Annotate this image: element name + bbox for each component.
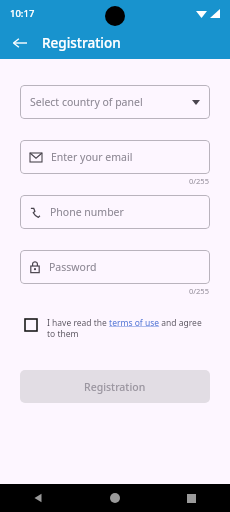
staticText: 0/255 [189,176,209,186]
staticText: I have read the terms of use and agree t… [47,317,208,339]
button[interactable]: I have read the terms of use and agree t… [22,317,208,339]
staticText: 0/255 [189,286,209,296]
button[interactable]: Enter your email [20,140,210,174]
button[interactable]: Back [6,29,34,57]
staticText: Select country of panel [30,95,143,109]
staticText: Registration [42,34,121,52]
button[interactable]: Phone number [20,195,210,229]
button[interactable]: Select country of panel [20,85,210,119]
staticText: Registration [84,380,146,394]
staticText: Phone number [50,205,124,219]
button[interactable]: Home [76,484,153,512]
staticText: 10:17 [10,7,35,20]
staticText: Password [49,260,97,274]
staticText: Enter your email [51,150,133,164]
button[interactable]: Registration [20,370,210,403]
button[interactable]: Back [0,484,76,512]
button[interactable]: Password [20,250,210,284]
button[interactable]: Recent apps [153,484,230,512]
